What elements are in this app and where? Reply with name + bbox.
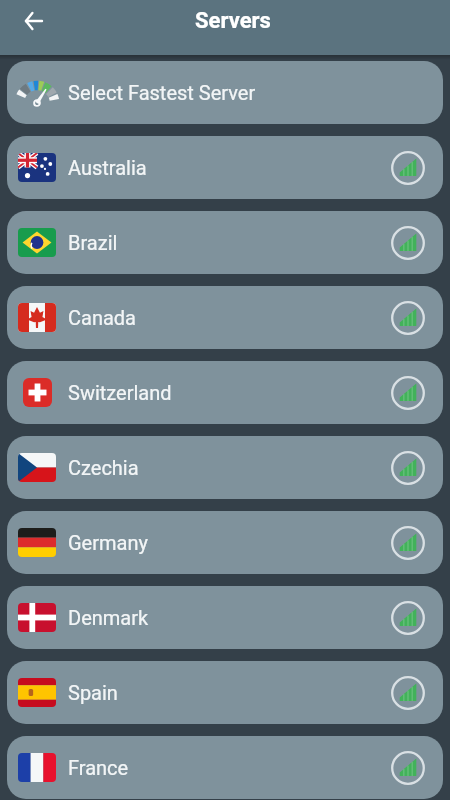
button[interactable]: Australia — [7, 136, 443, 199]
button[interactable]: Brazil — [7, 211, 443, 274]
button[interactable]: Switzerland — [7, 361, 443, 424]
button[interactable]: France — [7, 736, 443, 799]
button[interactable]: Canada — [7, 286, 443, 349]
staticText: Australia — [68, 156, 147, 179]
staticText: Canada — [68, 306, 136, 329]
staticText: Spain — [68, 681, 118, 704]
button[interactable]: Spain — [7, 661, 443, 724]
staticText: Switzerland — [68, 381, 172, 404]
button[interactable]: Select Fastest Server — [7, 61, 443, 124]
staticText: Czechia — [68, 456, 139, 479]
button[interactable]: Germany — [7, 511, 443, 574]
button[interactable]: Czechia — [7, 436, 443, 499]
staticText: Germany — [68, 531, 148, 554]
staticText: Brazil — [68, 231, 118, 254]
staticText: France — [68, 756, 129, 779]
staticText: Select Fastest Server — [68, 81, 256, 104]
button[interactable]: Denmark — [7, 586, 443, 649]
button[interactable] — [14, 1, 54, 41]
staticText: Servers — [195, 8, 271, 34]
staticText: Denmark — [68, 606, 149, 629]
